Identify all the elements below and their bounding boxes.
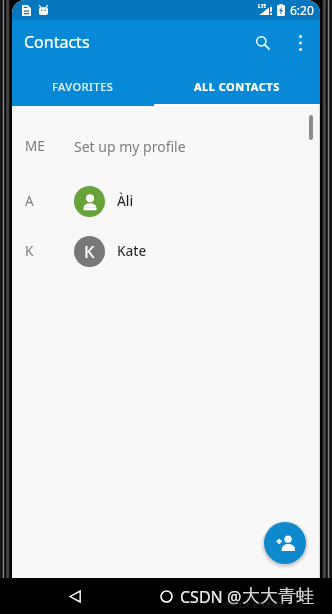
button[interactable]: ME <box>12 121 320 171</box>
staticText: A <box>25 192 34 210</box>
button[interactable]: Home <box>153 583 179 609</box>
button[interactable]: Search <box>245 25 281 61</box>
staticText: @稀土掘金技术社区 <box>224 600 287 610</box>
button[interactable]: Back <box>62 583 88 609</box>
staticText: K <box>84 240 95 263</box>
staticText: CSDN @ <box>180 586 242 608</box>
staticText: Kate <box>117 242 147 260</box>
button[interactable]: A <box>12 176 320 226</box>
staticText: 6:20 <box>290 2 314 18</box>
staticText: LTE <box>258 3 267 10</box>
staticText: ME <box>25 137 45 155</box>
staticText: ALL CONTACTS <box>194 79 280 94</box>
button[interactable]: FAVORITES <box>12 66 154 106</box>
button[interactable]: ALL CONTACTS <box>154 66 320 106</box>
staticText: Contacts <box>24 31 90 53</box>
staticText: K <box>25 242 34 260</box>
button[interactable]: More options <box>288 31 312 55</box>
staticText: 大大青蛙 <box>242 585 314 608</box>
button[interactable]: Add contact <box>264 522 306 564</box>
button[interactable]: K <box>12 226 320 276</box>
staticText: FAVORITES <box>52 79 114 94</box>
staticText: Àli <box>117 192 134 210</box>
staticText: Set up my profile <box>74 137 186 156</box>
